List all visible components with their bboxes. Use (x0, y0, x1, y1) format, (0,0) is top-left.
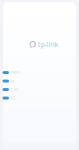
staticText: 5G (10, 95, 15, 101)
staticText: 2.4G (10, 87, 18, 92)
staticText: PWR (10, 70, 18, 75)
staticText: tp-link (38, 40, 59, 49)
staticText: RE (10, 78, 14, 84)
